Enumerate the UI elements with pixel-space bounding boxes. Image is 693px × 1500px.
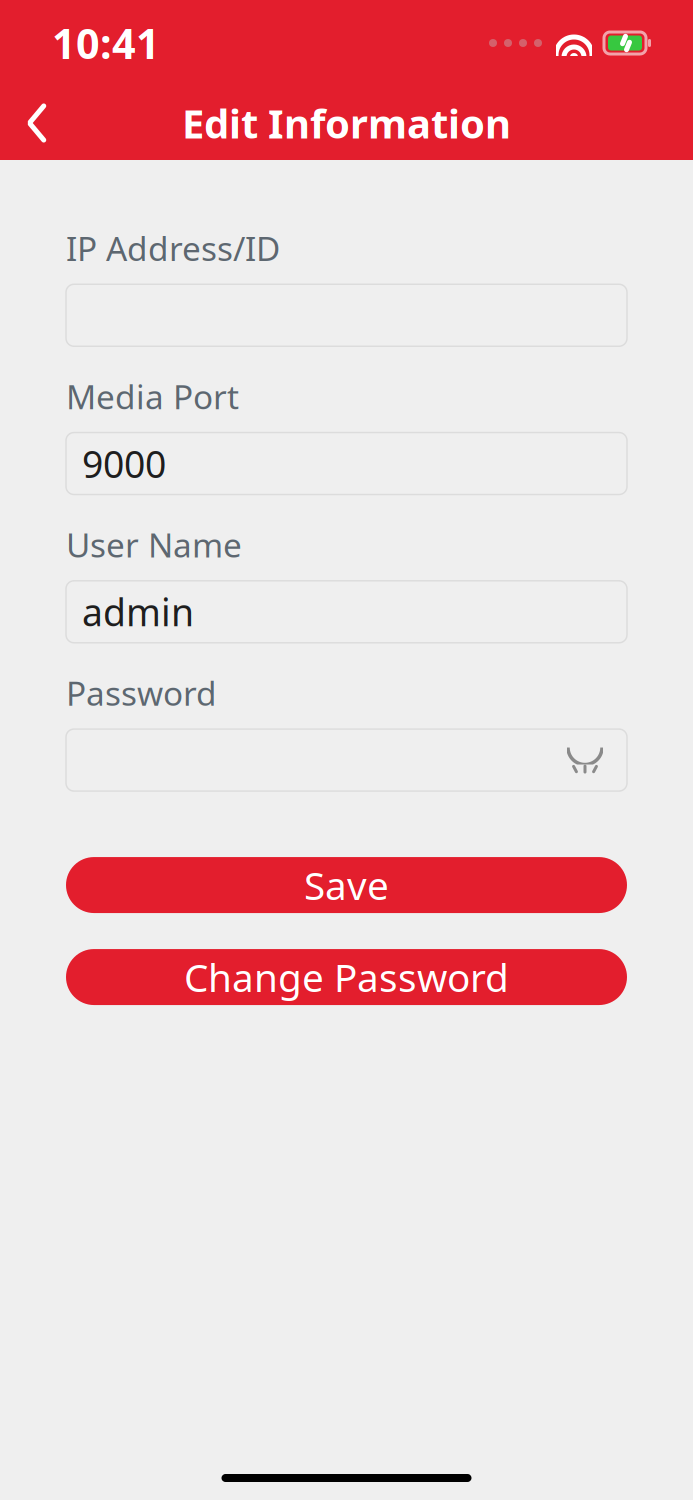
staticText: Save (304, 859, 389, 911)
button[interactable]: 9000 (66, 432, 627, 494)
button[interactable]: admin (66, 581, 627, 643)
staticText: User Name (66, 522, 242, 567)
staticText: Edit Information (182, 96, 511, 149)
staticText: admin (82, 587, 194, 637)
button[interactable]: Back (0, 86, 74, 160)
button[interactable]: Change Password (66, 949, 627, 1005)
staticText: Change Password (184, 951, 509, 1003)
staticText: 9000 (82, 439, 166, 488)
staticText: Password (66, 671, 217, 715)
staticText: IP Address/ID (66, 226, 280, 270)
button[interactable]: Save (66, 857, 627, 913)
staticText: 10:41 (52, 16, 160, 70)
staticText: Media Port (66, 374, 239, 419)
button[interactable] (66, 729, 627, 791)
